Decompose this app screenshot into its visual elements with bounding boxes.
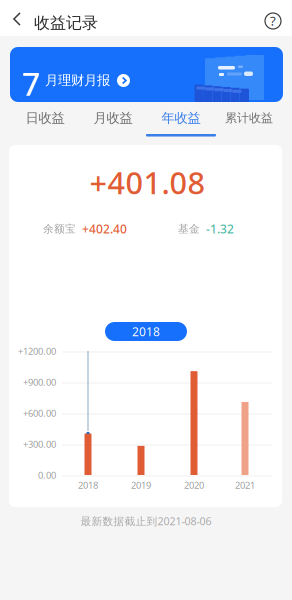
button[interactable]: 月收益 [78,110,146,136]
button[interactable]: 累计收益 [214,110,282,136]
staticText: 最新数据截止到2021-08-06 [80,514,211,528]
staticText: ? [270,12,276,29]
staticText: 7 [22,62,40,104]
staticText: 2018 [78,479,98,491]
button[interactable]: 日收益 [10,110,78,136]
staticText: 2021 [235,479,255,491]
staticText: 月理财月报 [45,72,110,88]
staticText: +600.00 [23,407,56,419]
staticText: 0.00 [38,469,56,481]
button[interactable]: 年收益 [146,110,214,136]
button[interactable]: Help [264,12,282,30]
staticText: +900.00 [23,376,56,388]
staticText: +402.40 [82,221,127,237]
staticText: 2020 [184,479,204,491]
staticText: 累计收益 [225,111,273,125]
staticText: 日收益 [25,110,64,126]
staticText: 月收益 [93,110,132,126]
staticText: +401.08 [89,162,205,203]
staticText: -1.32 [206,221,234,237]
staticText: 收益记录 [34,13,98,33]
staticText: +1200.00 [18,345,56,357]
button[interactable]: 7 [10,47,283,102]
staticText: 2019 [131,479,151,491]
button[interactable]: Back [4,6,30,32]
staticText: 2018 [132,323,160,339]
staticText: 余额宝 [43,222,76,235]
staticText: 年收益 [161,110,200,126]
staticText: 基金 [178,222,200,235]
staticText: +300.00 [23,438,56,450]
